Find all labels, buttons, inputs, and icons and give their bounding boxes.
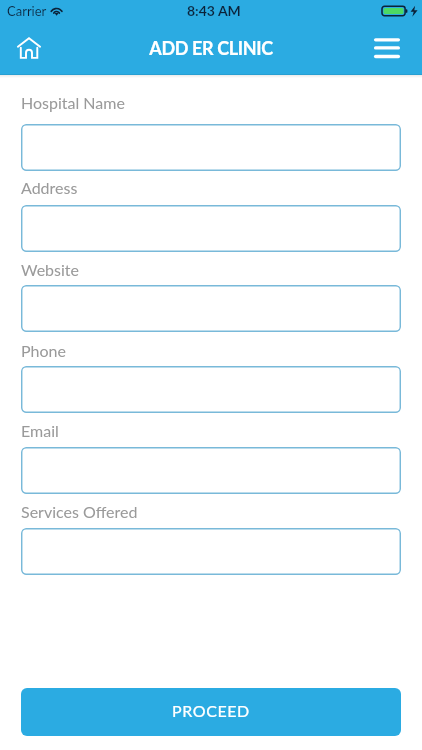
button[interactable] (21, 205, 401, 252)
staticText: 8:43 AM (187, 2, 241, 19)
staticText: Address (21, 178, 78, 197)
button[interactable]: Home (6, 25, 52, 71)
button[interactable] (21, 124, 401, 171)
button[interactable]: Menu (364, 25, 410, 71)
button[interactable] (21, 528, 401, 575)
staticText: Email (21, 421, 59, 440)
staticText: Services Offered (21, 502, 138, 521)
button[interactable] (21, 447, 401, 494)
staticText: PROCEED (172, 701, 250, 720)
staticText: Website (21, 260, 79, 279)
button[interactable] (21, 285, 401, 332)
button[interactable] (21, 366, 401, 413)
staticText: Carrier (7, 3, 47, 19)
staticText: ADD ER CLINIC (149, 37, 273, 59)
staticText: Phone (21, 341, 66, 360)
staticText: Hospital Name (21, 93, 125, 112)
button[interactable]: PROCEED (21, 688, 401, 736)
